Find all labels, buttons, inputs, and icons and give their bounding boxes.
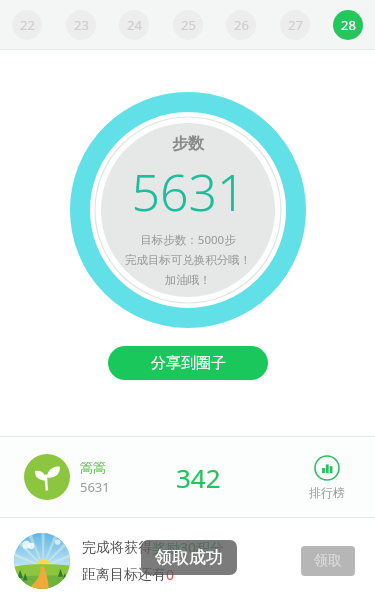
staticText: 27 <box>288 16 303 34</box>
staticText: 排行榜 <box>309 485 345 500</box>
staticText: 距离目标还有 <box>82 566 166 584</box>
button[interactable]: 25 <box>173 10 203 40</box>
staticText: 分享到圈子 <box>151 354 226 373</box>
button[interactable]: 28 <box>333 10 363 40</box>
staticText: 26 <box>234 16 249 34</box>
staticText: 25 <box>181 16 196 34</box>
button[interactable]: 22 <box>12 10 42 40</box>
button[interactable]: 分享到圈子 <box>108 346 268 380</box>
staticText: 奖励30积分 <box>152 538 225 557</box>
staticText: 目标步数：5000步 完成目标可兑换积分哦！ 加油哦！ <box>93 232 283 287</box>
staticText: 28 <box>341 16 356 34</box>
staticText: 5631 <box>80 478 110 496</box>
button[interactable]: 23 <box>66 10 96 40</box>
other: 排行榜 <box>314 455 340 481</box>
staticText: 22 <box>20 16 35 34</box>
staticText: 领取成功 <box>155 547 223 568</box>
staticText: 完成将获得 <box>82 539 152 557</box>
staticText: 篙篙 <box>80 459 106 475</box>
button[interactable]: 27 <box>280 10 310 40</box>
staticText: 5631 <box>131 158 246 226</box>
staticText: 步数 <box>172 134 204 154</box>
button[interactable]: 领取 <box>301 546 355 576</box>
staticText: 342 <box>176 460 221 495</box>
staticText: 领取 <box>314 552 342 570</box>
staticText: 0 <box>166 565 175 584</box>
button[interactable]: 篙篙 <box>24 454 110 500</box>
staticText: 24 <box>127 16 142 34</box>
button[interactable]: 26 <box>226 10 256 40</box>
button[interactable]: 24 <box>119 10 149 40</box>
button[interactable]: 排行榜 <box>303 455 351 500</box>
staticText: 23 <box>74 16 89 34</box>
